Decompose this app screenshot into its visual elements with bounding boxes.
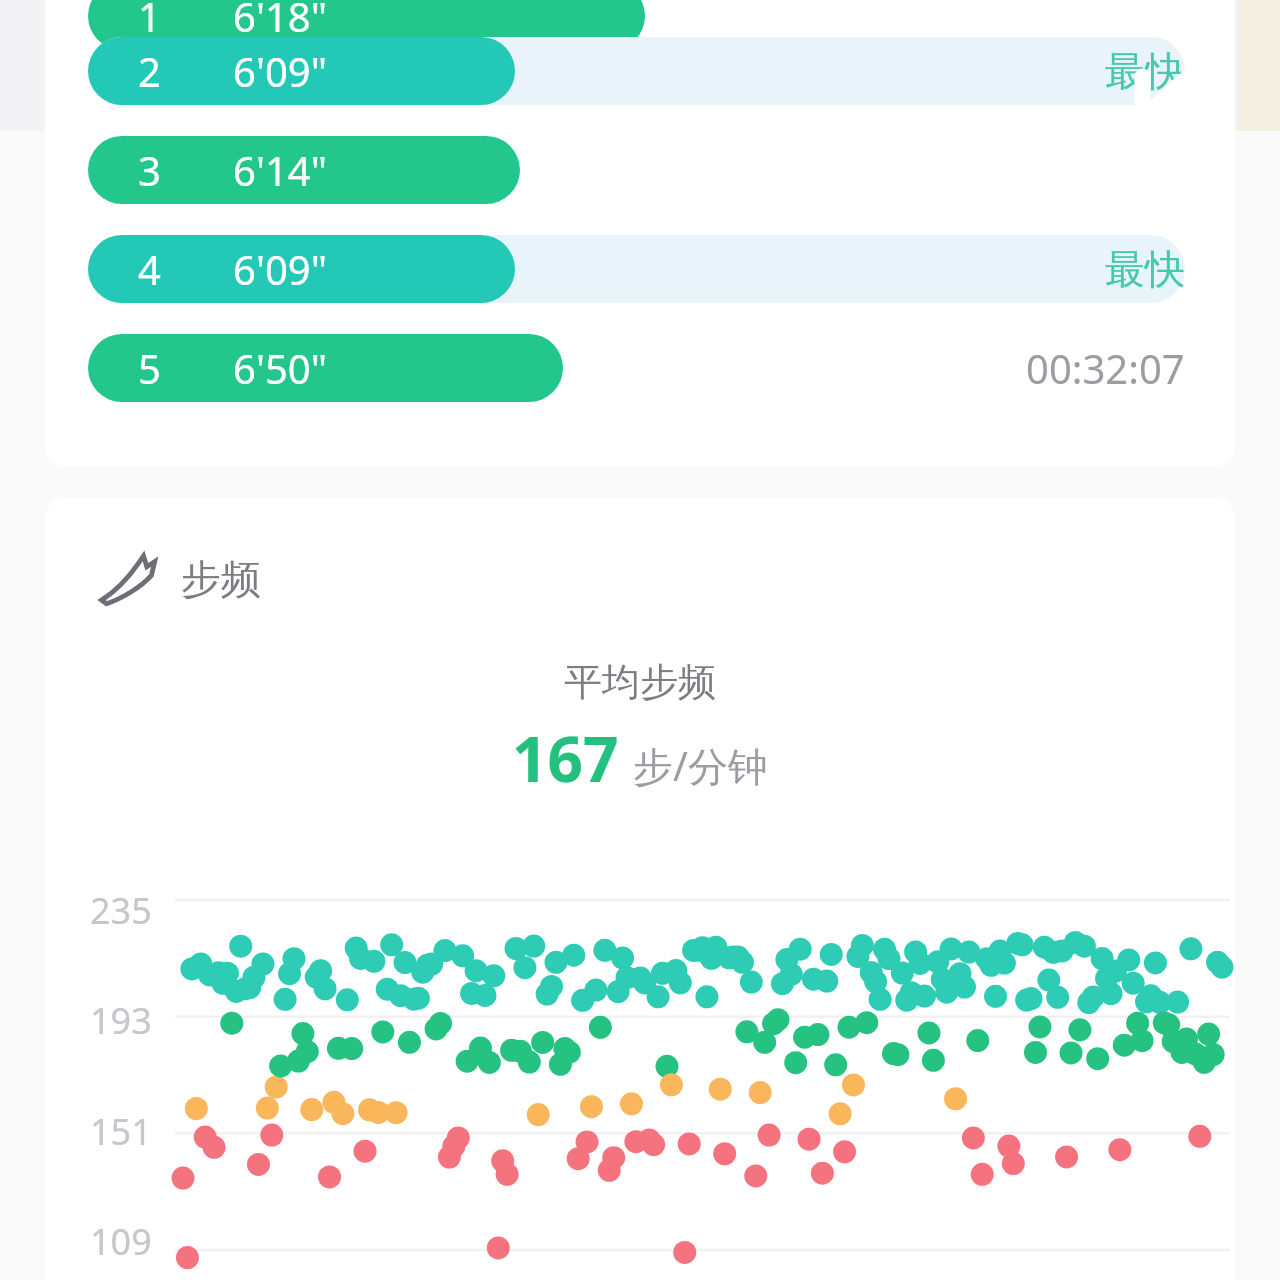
staticText: 00:32:07 bbox=[1026, 341, 1185, 395]
staticText: 193 bbox=[90, 996, 152, 1045]
button[interactable]: 3 bbox=[45, 136, 1235, 204]
staticText: 235 bbox=[90, 886, 152, 935]
staticText: 151 bbox=[90, 1107, 152, 1156]
staticText: 4 bbox=[138, 242, 161, 296]
staticText: 6'14" bbox=[233, 143, 327, 197]
button[interactable]: Cadence bbox=[95, 546, 261, 612]
staticText: 6'18" bbox=[233, 0, 327, 43]
staticText: 1 bbox=[138, 0, 161, 43]
other: Cadence bbox=[95, 546, 161, 612]
staticText: 6'50" bbox=[233, 341, 327, 395]
staticText: 最快 bbox=[1105, 46, 1185, 96]
button[interactable]: 1 bbox=[45, 0, 1235, 50]
staticText: 最快 bbox=[1105, 244, 1185, 294]
button[interactable]: 2 bbox=[45, 37, 1235, 105]
staticText: 3 bbox=[138, 143, 161, 197]
button[interactable]: 5 bbox=[45, 334, 1235, 402]
staticText: 167 bbox=[512, 716, 619, 800]
staticText: 步/分钟 bbox=[633, 738, 768, 793]
staticText: 5 bbox=[138, 341, 161, 395]
staticText: 6'09" bbox=[233, 242, 327, 296]
button[interactable]: 4 bbox=[45, 235, 1235, 303]
staticText: 6'09" bbox=[233, 44, 327, 98]
staticText: 109 bbox=[90, 1217, 152, 1266]
staticText: 2 bbox=[138, 44, 161, 98]
staticText: 平均步频 bbox=[564, 658, 716, 706]
staticText: 步频 bbox=[181, 554, 261, 604]
